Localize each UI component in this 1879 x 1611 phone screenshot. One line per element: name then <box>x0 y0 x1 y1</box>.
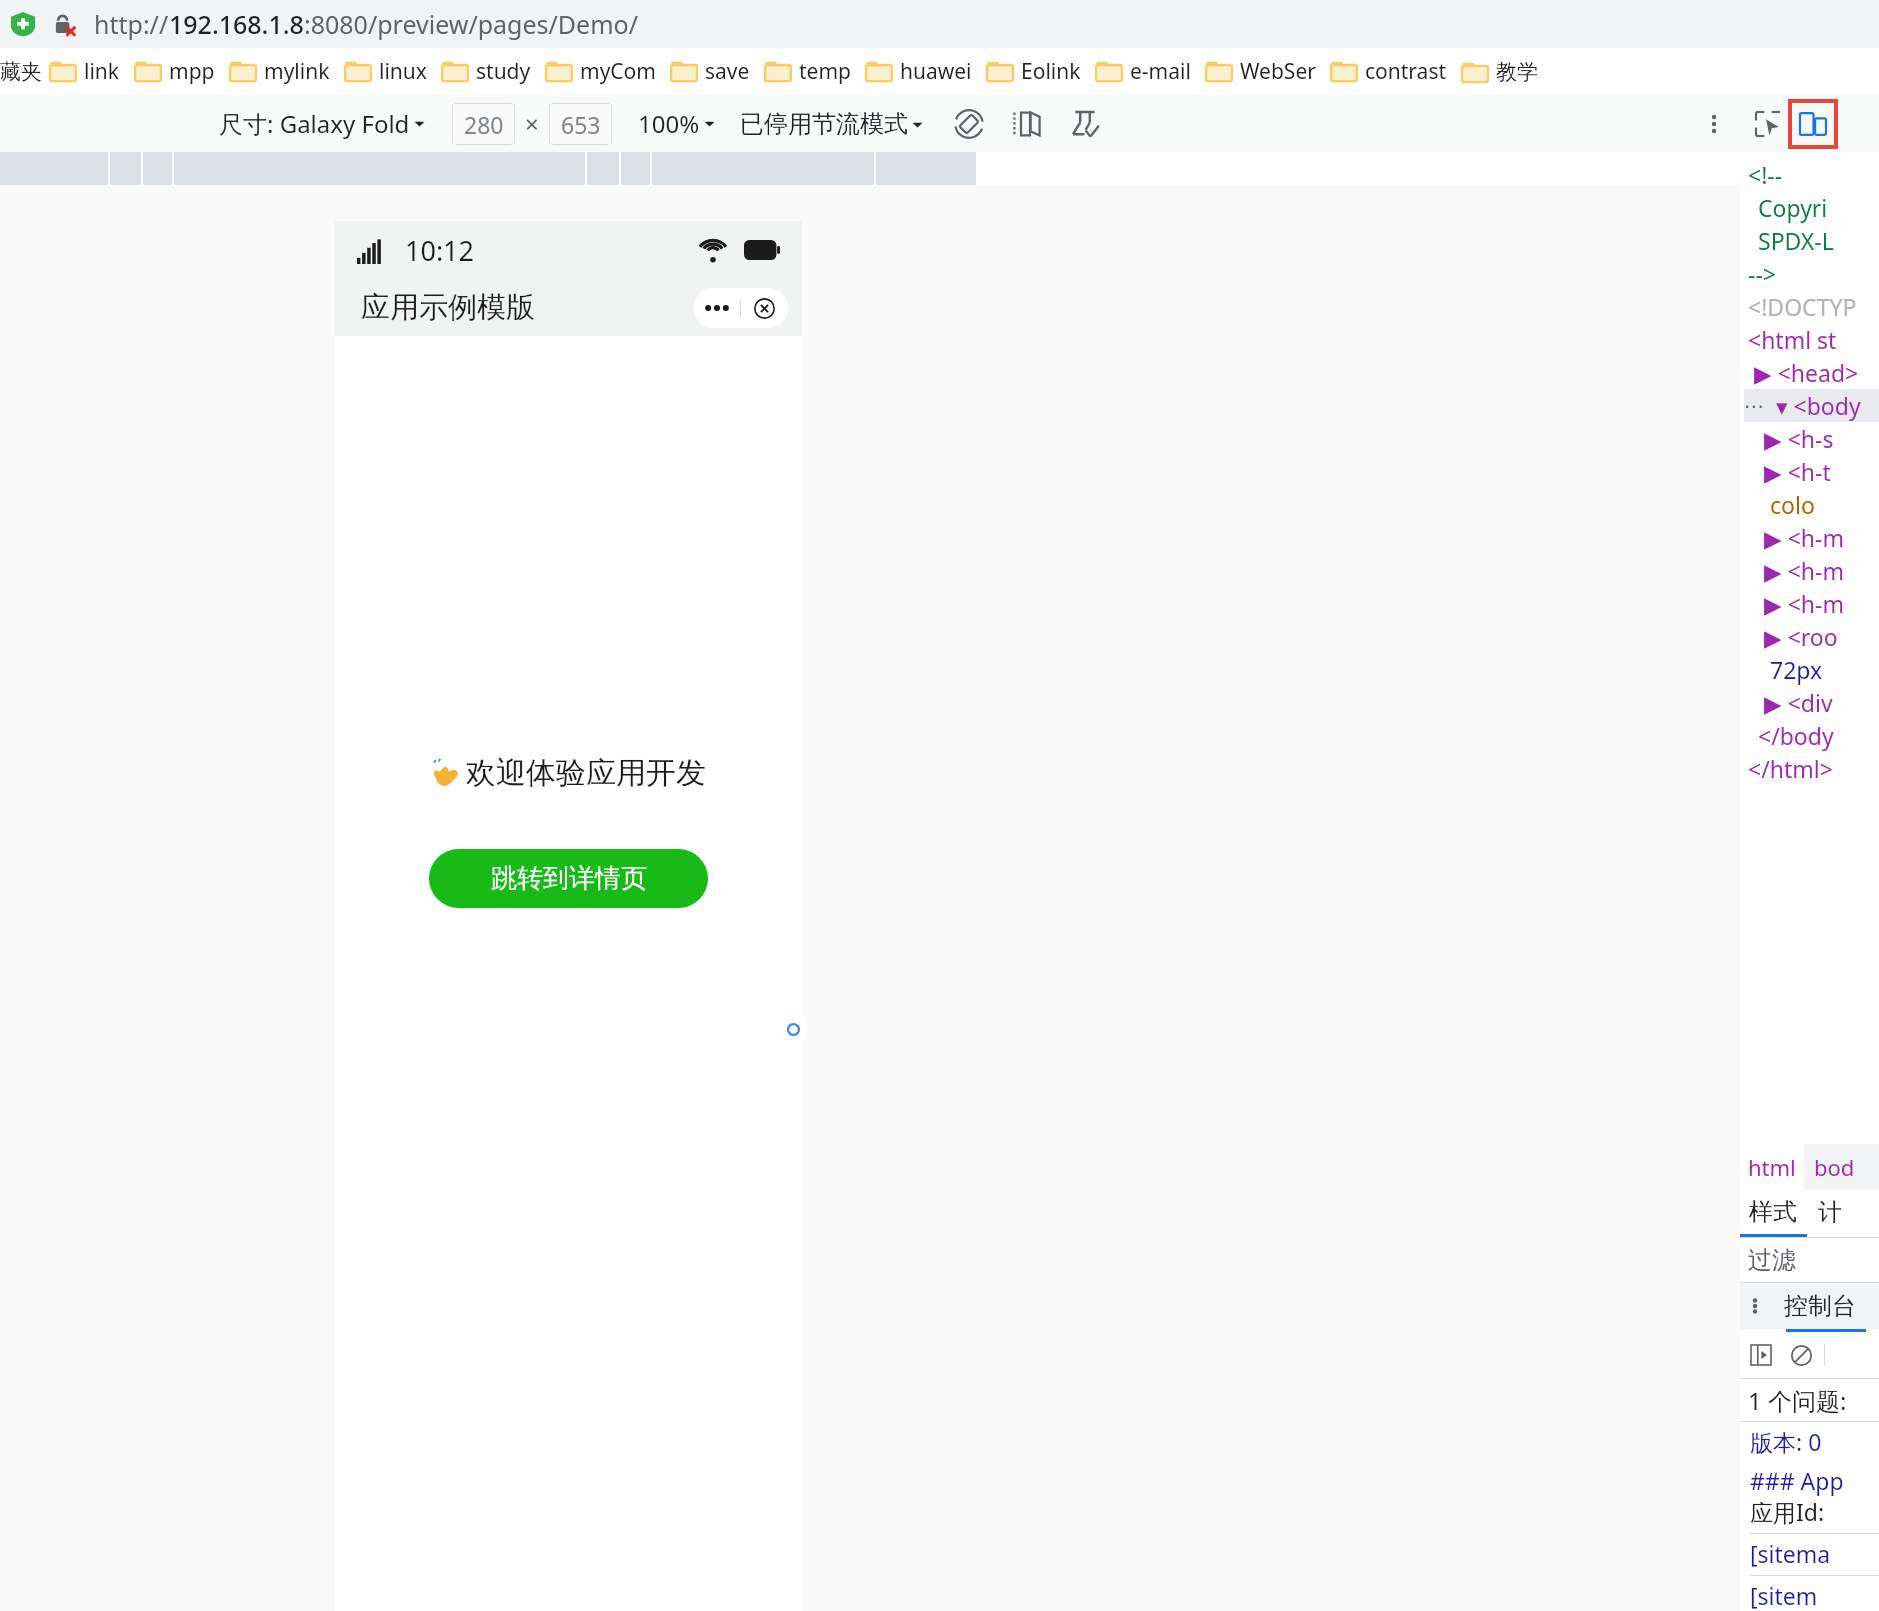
staticText: WebSer <box>1240 57 1316 86</box>
staticText: ▶ <h-m <box>1764 555 1844 586</box>
staticText: ▶ <h-t <box>1764 456 1831 487</box>
button[interactable]: save <box>663 53 757 90</box>
button[interactable]: </html> <box>1744 752 1879 785</box>
button[interactable]: Not secure <box>50 9 80 39</box>
button[interactable]: Badge <box>780 1016 806 1042</box>
staticText: temp <box>799 57 851 86</box>
staticText: <!DOCTYP <box>1748 291 1857 322</box>
button[interactable]: myCom <box>538 53 663 90</box>
button[interactable]: 样式 <box>1740 1190 1806 1234</box>
staticText: ▶ <h-s <box>1764 423 1834 454</box>
staticText: [sitema <box>1750 1538 1831 1569</box>
staticText: 280 <box>464 109 504 140</box>
button[interactable]: ▶ <head> <box>1744 356 1879 389</box>
staticText: ▶ <h-m <box>1764 522 1844 553</box>
button[interactable]: Fold <box>1006 103 1048 145</box>
button[interactable]: More tools <box>1740 1291 1770 1321</box>
button[interactable]: 已停用节流模式 <box>736 106 928 142</box>
button[interactable]: e-mail <box>1088 53 1198 90</box>
staticText: Copyri <box>1758 192 1828 223</box>
button[interactable]: ▶ <div <box>1744 686 1879 719</box>
staticText: 10:12 <box>405 232 475 269</box>
staticText: 应用Id: <box>1750 1496 1825 1527</box>
button[interactable]: <!-- <box>1744 158 1879 191</box>
staticText: 653 <box>561 109 601 140</box>
staticText: × <box>525 107 539 140</box>
button[interactable]: ▶ <h-t <box>1744 455 1879 488</box>
button[interactable]: --> <box>1744 257 1879 290</box>
staticText: http:// <box>94 7 169 41</box>
button[interactable]: 280 <box>452 103 515 145</box>
button[interactable]: 教学 <box>1454 55 1545 89</box>
button[interactable]: More options <box>1696 106 1732 142</box>
button[interactable]: Extension <box>8 9 38 39</box>
button[interactable]: Sidebar <box>1746 1340 1776 1370</box>
staticText: 1 个问题: <box>1748 1384 1847 1417</box>
button[interactable]: 100% <box>634 104 720 143</box>
staticText: mylink <box>264 57 330 86</box>
staticText: </html> <box>1748 753 1833 784</box>
button[interactable]: Eolink <box>979 53 1088 90</box>
staticText: SPDX-L <box>1758 225 1834 256</box>
button[interactable]: Copyri <box>1744 191 1879 224</box>
staticText: linux <box>379 57 427 86</box>
staticText: ⋯ <box>1744 394 1764 417</box>
staticText: e-mail <box>1130 57 1191 86</box>
staticText: 应用示例模版 <box>361 289 535 326</box>
staticText: <html st <box>1748 324 1837 355</box>
button[interactable]: bod <box>1814 1152 1855 1182</box>
staticText: mpp <box>169 57 215 86</box>
button[interactable]: mpp <box>127 53 222 90</box>
button[interactable]: 控制台 <box>1784 1291 1856 1321</box>
button[interactable]: <!DOCTYP <box>1744 290 1879 323</box>
button[interactable]: </body <box>1744 719 1879 752</box>
button[interactable]: WebSer <box>1198 53 1323 90</box>
staticText: 100% <box>638 107 700 140</box>
button[interactable]: linux <box>337 53 434 90</box>
staticText: ▶ <head> <box>1754 357 1859 388</box>
button[interactable]: colo <box>1744 488 1879 521</box>
button[interactable]: 尺寸: Galaxy Fold <box>215 104 430 143</box>
button[interactable]: <html st <box>1744 323 1879 356</box>
button[interactable]: html <box>1740 1144 1804 1190</box>
button[interactable]: Inspect element <box>1750 106 1786 142</box>
staticText: </body <box>1758 720 1834 751</box>
button[interactable]: huawei <box>858 53 979 90</box>
button[interactable]: 计 <box>1818 1197 1842 1227</box>
button[interactable]: ▶ <h-m <box>1744 521 1879 554</box>
staticText: colo <box>1770 489 1815 520</box>
staticText: huawei <box>900 57 972 86</box>
staticText: link <box>84 57 120 86</box>
button[interactable]: ⋯ <box>1744 389 1879 422</box>
button[interactable]: temp <box>757 53 858 90</box>
staticText: 过滤 <box>1748 1245 1796 1275</box>
button[interactable]: ▶ <h-m <box>1744 554 1879 587</box>
button[interactable]: 跳转到详情页 <box>429 849 708 908</box>
staticText: :8080/preview/pages/Demo/ <box>304 7 639 41</box>
button[interactable]: ▶ <roo <box>1744 620 1879 653</box>
staticText: 版本: 0 <box>1750 1426 1822 1457</box>
button[interactable]: Experiments <box>1064 103 1106 145</box>
button[interactable]: Menu <box>694 288 740 328</box>
staticText: ### App <box>1750 1465 1844 1496</box>
button[interactable]: SPDX-L <box>1744 224 1879 257</box>
button[interactable]: 653 <box>549 103 612 145</box>
button[interactable]: 72px <box>1744 653 1879 686</box>
staticText: save <box>705 57 750 86</box>
button[interactable]: mylink <box>222 53 337 90</box>
button[interactable]: ▶ <h-m <box>1744 587 1879 620</box>
button[interactable]: contrast <box>1323 53 1454 90</box>
staticText: 192.168.1.8 <box>169 7 304 41</box>
button[interactable]: link <box>42 53 127 90</box>
staticText: --> <box>1748 258 1776 289</box>
button[interactable]: Clear console <box>1786 1340 1816 1370</box>
button[interactable]: Rotate <box>948 103 990 145</box>
button[interactable]: Close <box>741 288 788 328</box>
button[interactable]: study <box>434 53 538 90</box>
staticText: 样式 <box>1749 1197 1797 1227</box>
staticText: myCom <box>580 57 656 86</box>
staticText: 跳转到详情页 <box>491 862 647 895</box>
button[interactable]: Toggle device toolbar <box>1790 101 1836 147</box>
button[interactable]: ▶ <h-s <box>1744 422 1879 455</box>
staticText: ▾ <body <box>1776 390 1861 421</box>
